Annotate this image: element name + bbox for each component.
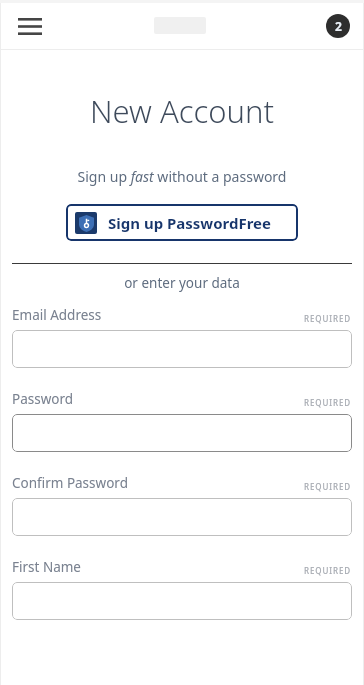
button[interactable] xyxy=(12,498,352,536)
staticText: Sign up fast without a password xyxy=(0,167,364,186)
staticText: 2 xyxy=(335,18,342,34)
staticText: Confirm Password xyxy=(12,474,128,492)
button[interactable]: Notifications: 2 xyxy=(326,14,350,38)
staticText: Password xyxy=(12,390,74,408)
staticText: Email Address xyxy=(12,306,102,324)
staticText: REQUIRED xyxy=(304,313,352,324)
staticText: or enter your data xyxy=(0,274,364,292)
button[interactable] xyxy=(12,330,352,368)
staticText: REQUIRED xyxy=(304,397,352,408)
button[interactable]: Menu xyxy=(12,8,48,44)
staticText: REQUIRED xyxy=(304,481,352,492)
button[interactable] xyxy=(12,414,352,452)
staticText: First Name xyxy=(12,558,81,576)
staticText: New Account xyxy=(0,90,364,132)
staticText: REQUIRED xyxy=(304,565,352,576)
button[interactable] xyxy=(12,582,352,620)
button[interactable]: Sign up PasswordFree xyxy=(66,204,298,241)
staticText: Sign up PasswordFree xyxy=(108,213,272,233)
